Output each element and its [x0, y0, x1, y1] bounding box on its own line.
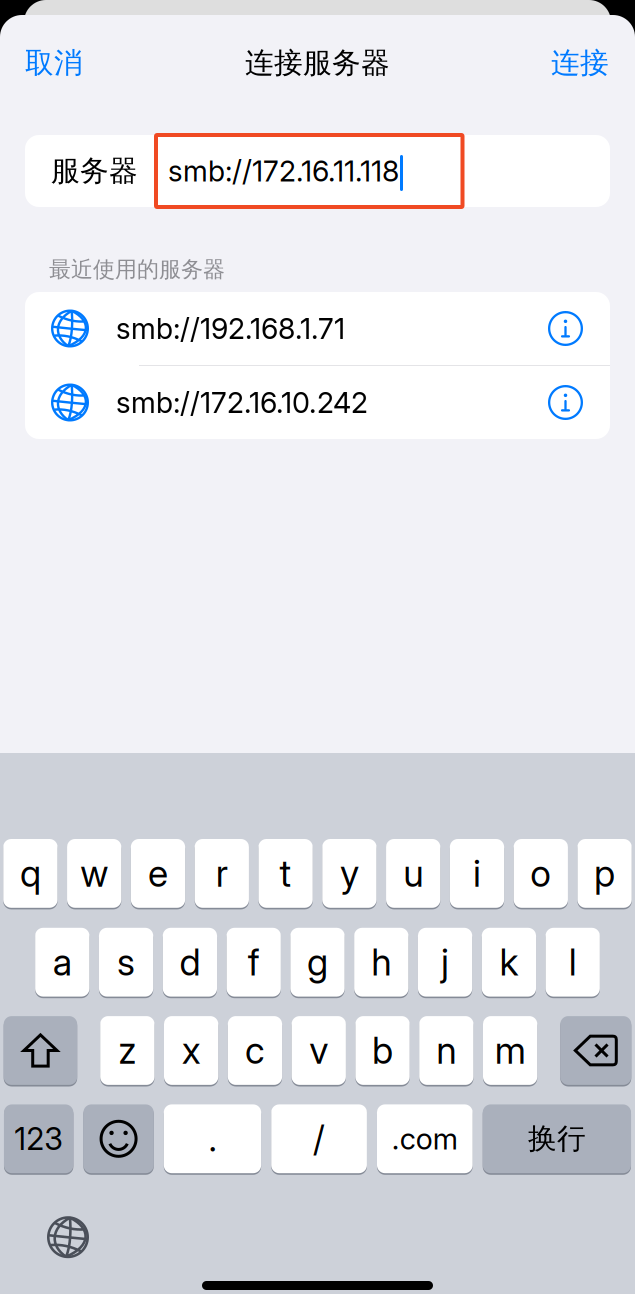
staticText: .	[208, 1118, 216, 1160]
staticText: smb://172.16.10.242	[116, 385, 368, 420]
staticText: 换行	[528, 1121, 586, 1157]
staticText: z	[118, 1028, 136, 1073]
staticText: m	[495, 1028, 526, 1073]
staticText: s	[117, 940, 135, 984]
staticText: d	[179, 940, 200, 984]
button[interactable]: Shift	[4, 1016, 77, 1085]
button[interactable]: .	[164, 1104, 261, 1173]
button[interactable]: 换行	[483, 1104, 631, 1173]
staticText: w	[80, 851, 108, 896]
button[interactable]: w	[67, 839, 121, 908]
button[interactable]: Delete	[560, 1016, 631, 1085]
staticText: smb://192.168.1.71	[116, 311, 345, 346]
button[interactable]: 123	[4, 1104, 73, 1173]
button[interactable]: t	[258, 839, 313, 908]
staticText: j	[441, 940, 449, 984]
staticText: u	[403, 851, 423, 896]
staticText: e	[148, 851, 168, 896]
button[interactable]: h	[354, 928, 408, 997]
button[interactable]: r	[195, 839, 249, 908]
button[interactable]: Emoji	[83, 1104, 154, 1173]
button[interactable]: k	[482, 928, 536, 997]
button[interactable]: smb://172.16.11.118	[154, 133, 464, 209]
staticText: t	[280, 851, 292, 896]
staticText: o	[530, 851, 551, 896]
staticText: x	[182, 1028, 201, 1073]
staticText: r	[216, 851, 228, 896]
staticText: c	[245, 1028, 265, 1073]
button[interactable]: o	[514, 839, 568, 908]
button[interactable]: f	[226, 928, 281, 997]
staticText: /	[313, 1118, 325, 1160]
button[interactable]: /	[271, 1104, 367, 1173]
staticText: h	[371, 940, 391, 984]
button[interactable]: x	[164, 1016, 218, 1085]
button[interactable]: v	[292, 1016, 346, 1085]
staticText: l	[569, 940, 577, 984]
button[interactable]: smb://192.168.1.71	[25, 292, 610, 365]
staticText: g	[307, 940, 328, 984]
button[interactable]: 连接	[525, 31, 635, 95]
button[interactable]: a	[35, 928, 89, 997]
button[interactable]: z	[100, 1016, 154, 1085]
staticText: y	[340, 851, 359, 896]
staticText: i	[473, 851, 481, 896]
staticText: q	[20, 851, 41, 896]
staticText: k	[499, 940, 518, 984]
button[interactable]: u	[386, 839, 440, 908]
staticText: a	[53, 940, 72, 984]
button[interactable]: q	[3, 839, 57, 908]
button[interactable]: 取消	[0, 31, 108, 95]
staticText: smb://172.16.11.118	[168, 154, 399, 188]
button[interactable]: Next keyboard	[39, 1211, 97, 1263]
button[interactable]: s	[99, 928, 153, 997]
button[interactable]: smb://172.16.10.242	[25, 366, 610, 439]
button[interactable]: e	[131, 839, 185, 908]
button[interactable]: l	[545, 928, 600, 997]
staticText: .com	[392, 1121, 458, 1157]
staticText: f	[248, 940, 260, 984]
staticText: b	[372, 1028, 393, 1073]
staticText: 最近使用的服务器	[49, 256, 225, 283]
button[interactable]: j	[418, 928, 472, 997]
button[interactable]: m	[483, 1016, 537, 1085]
staticText: 连接服务器	[245, 45, 390, 81]
staticText: n	[436, 1028, 456, 1073]
staticText: 服务器	[51, 153, 138, 189]
button[interactable]: p	[577, 839, 632, 908]
staticText: 123	[14, 1120, 63, 1157]
staticText: v	[309, 1028, 328, 1073]
button[interactable]: y	[322, 839, 376, 908]
button[interactable]: g	[290, 928, 345, 997]
button[interactable]: .com	[377, 1104, 473, 1173]
button[interactable]: c	[228, 1016, 282, 1085]
button[interactable]: b	[355, 1016, 410, 1085]
staticText: p	[594, 851, 615, 896]
button[interactable]: n	[419, 1016, 473, 1085]
staticText: 连接	[551, 45, 609, 81]
staticText: 取消	[25, 45, 83, 81]
button[interactable]: d	[163, 928, 217, 997]
button[interactable]: i	[450, 839, 504, 908]
